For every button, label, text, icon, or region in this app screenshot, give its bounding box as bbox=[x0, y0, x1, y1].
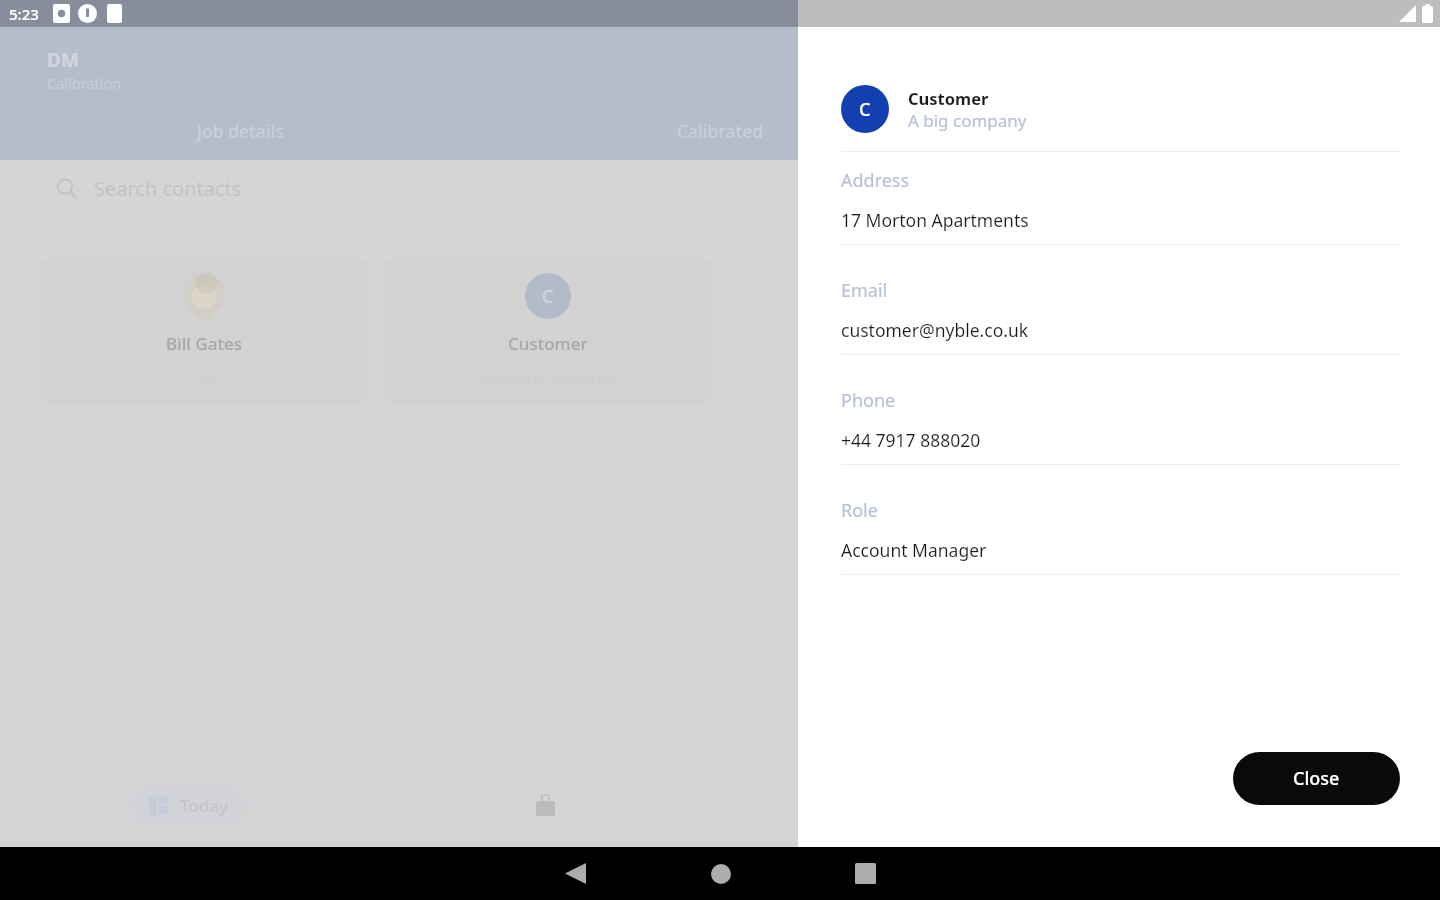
staticText: Job details bbox=[197, 119, 284, 143]
staticText: Close bbox=[1293, 766, 1340, 791]
staticText: Today bbox=[180, 794, 228, 817]
button[interactable]: Home bbox=[648, 847, 793, 900]
staticText: Customer bbox=[908, 87, 989, 109]
staticText: Customer bbox=[508, 332, 588, 355]
button[interactable]: Recents bbox=[793, 847, 938, 900]
staticText: Phone bbox=[841, 388, 896, 413]
staticText: Calibration bbox=[47, 73, 122, 93]
button[interactable]: Jobs bbox=[514, 786, 577, 825]
staticText: DM bbox=[47, 47, 79, 73]
button[interactable]: Close bbox=[1233, 752, 1400, 805]
staticText: Calibrated bbox=[677, 119, 764, 143]
staticText: +44 7917 888020 bbox=[841, 428, 981, 452]
button[interactable]: Today bbox=[130, 785, 247, 826]
staticText: C bbox=[859, 97, 871, 122]
staticText: Bill Gates bbox=[166, 332, 242, 355]
staticText: Email bbox=[841, 278, 888, 303]
staticText: 5:23 bbox=[9, 4, 39, 24]
button[interactable]: C bbox=[384, 257, 712, 406]
staticText: Search contacts bbox=[94, 175, 242, 202]
button[interactable]: Bill Gates bbox=[40, 257, 368, 406]
button[interactable]: Notes bbox=[960, 114, 1440, 148]
staticText: C bbox=[542, 284, 554, 309]
staticText: customer@nyble.co.uk bbox=[841, 318, 1029, 342]
button[interactable]: Calibrated bbox=[480, 114, 960, 148]
staticText: A big company bbox=[908, 109, 1027, 132]
staticText: Role bbox=[841, 498, 878, 523]
button[interactable]: Back bbox=[503, 847, 648, 900]
staticText: 17 Morton Apartments bbox=[841, 208, 1029, 232]
staticText: Account Manager bbox=[841, 538, 987, 562]
staticText: Address bbox=[841, 168, 910, 193]
